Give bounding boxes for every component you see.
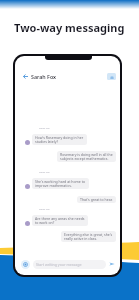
staticText: She's working hard at home to improve ma…	[35, 179, 86, 188]
staticText: Are there any areas she needs to work on…	[35, 216, 85, 225]
staticText: Rosemary is doing well in all the subjec…	[60, 152, 113, 161]
staticText: Start writing your message	[36, 262, 82, 267]
staticText: Two-way messaging	[14, 20, 125, 35]
staticText: Sarah Fox	[39, 171, 50, 174]
button[interactable]: Send	[108, 260, 116, 268]
button[interactable]: Video call	[107, 73, 116, 80]
staticText: Everything else is great, she's really a…	[64, 232, 113, 241]
button[interactable]: Start writing your message	[33, 260, 106, 269]
button[interactable]: Add attachment	[21, 260, 30, 269]
staticText: Sarah Fox	[39, 127, 50, 130]
staticText: Sarah Fox	[39, 208, 50, 211]
button[interactable]: Back	[21, 72, 29, 80]
staticText: How's Rosemary doing in her studies late…	[35, 135, 84, 144]
staticText: That's great to hear.	[80, 197, 113, 202]
staticText: Sarah Fox	[31, 73, 57, 80]
